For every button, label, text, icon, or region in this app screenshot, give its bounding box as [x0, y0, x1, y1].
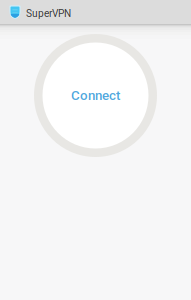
button[interactable]: Connect: [34, 34, 157, 157]
staticText: SuperVPN: [26, 8, 71, 19]
staticText: Connect: [71, 88, 120, 103]
